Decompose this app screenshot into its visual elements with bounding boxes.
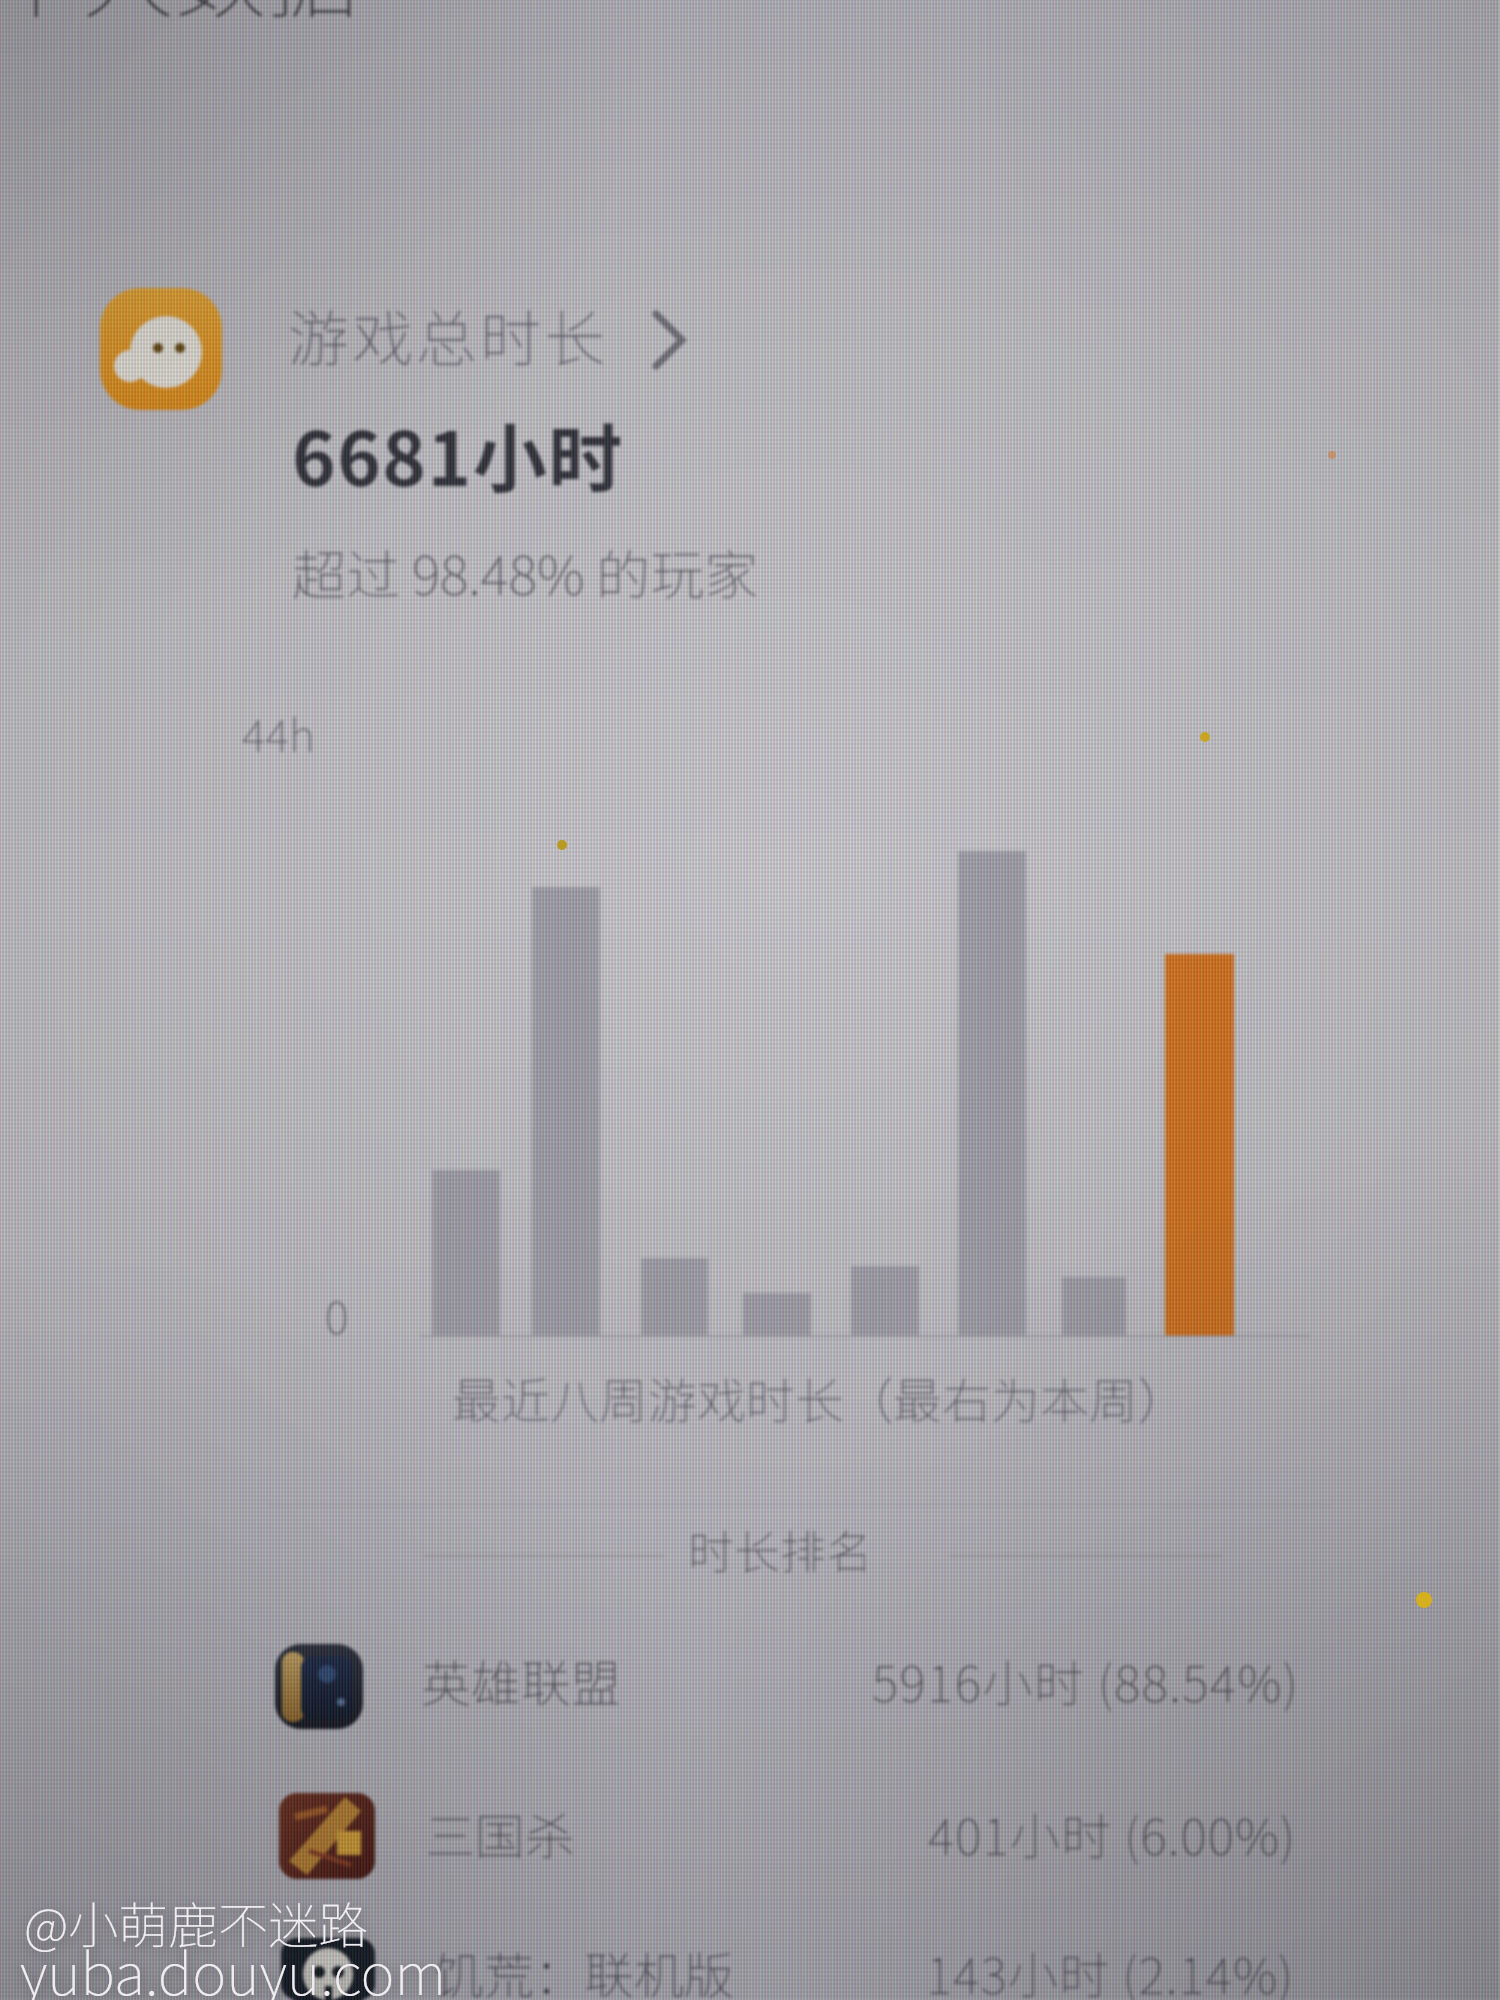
- button[interactable]: 三国杀: [264, 1782, 1324, 1894]
- staticText: 饥荒：联机版: [434, 1936, 734, 2000]
- staticText: 英雄联盟: [421, 1644, 621, 1716]
- button[interactable]: 英雄联盟: [260, 1630, 1320, 1745]
- staticText: 最近八周游戏时长（最右为本周）: [452, 1362, 1188, 1433]
- staticText: 个人数据: [0, 0, 359, 37]
- staticText: 超过 98.48% 的玩家: [292, 532, 759, 610]
- staticText: 0: [325, 1282, 349, 1347]
- staticText: 游戏总时长: [288, 290, 609, 378]
- staticText: @小萌鹿不迷路: [24, 1886, 369, 1958]
- staticText: 44h: [242, 700, 315, 765]
- staticText: 三国杀: [425, 1797, 575, 1869]
- staticText: yuba.douyu.com: [20, 1928, 446, 2000]
- staticText: 6681小时: [292, 400, 624, 507]
- staticText: 5916小时 (88.54%): [872, 1644, 1300, 1716]
- button[interactable]: 游戏总时长: [280, 290, 710, 380]
- button[interactable]: 饥荒：联机版: [266, 1922, 1326, 2000]
- staticText: 143小时 (2.14%): [926, 1936, 1295, 2000]
- staticText: 401小时 (6.00%): [928, 1797, 1297, 1869]
- staticText: 时长排名: [688, 1516, 872, 1583]
